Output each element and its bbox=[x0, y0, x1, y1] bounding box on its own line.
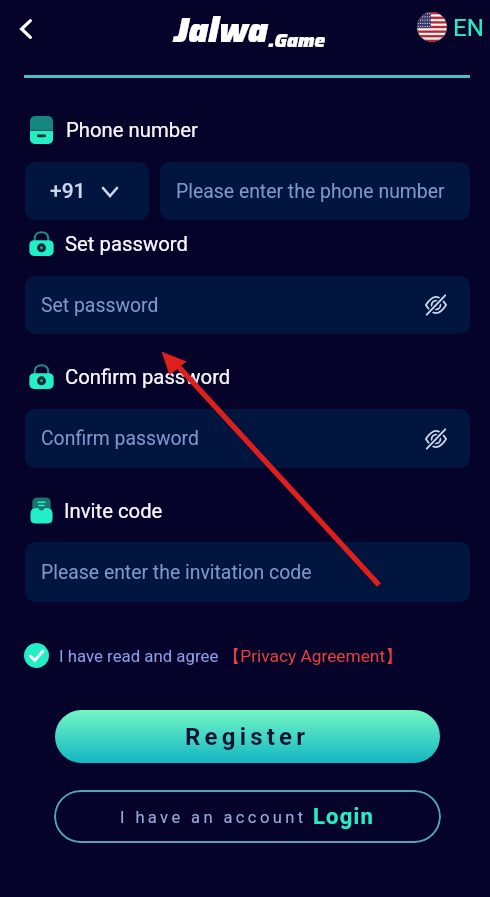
staticText: Register bbox=[185, 723, 310, 751]
button[interactable]: +91 bbox=[25, 162, 149, 220]
staticText: +91 bbox=[50, 179, 86, 204]
staticText: Login bbox=[313, 804, 375, 830]
button[interactable]: I have an account bbox=[54, 790, 441, 843]
staticText: Jalwa bbox=[174, 3, 268, 57]
staticText: 【Privacy Agreement】 bbox=[223, 645, 403, 667]
staticText: I have read and agree bbox=[59, 646, 219, 666]
staticText: Set password bbox=[65, 232, 188, 256]
button[interactable]: Set password bbox=[25, 276, 470, 334]
button[interactable]: Show password bbox=[422, 425, 450, 453]
button[interactable]: Register bbox=[55, 710, 440, 763]
staticText: Set password bbox=[41, 294, 159, 317]
staticText: .Game bbox=[268, 25, 326, 55]
staticText: Confirm password bbox=[65, 365, 231, 389]
button[interactable]: Confirm password bbox=[25, 409, 470, 468]
button[interactable]: Language EN bbox=[417, 12, 484, 42]
button[interactable]: Please enter the invitation code bbox=[25, 542, 470, 602]
button[interactable]: Please enter the phone number bbox=[160, 162, 470, 220]
button[interactable]: Confirm password bbox=[28, 363, 231, 390]
button[interactable]: Back bbox=[8, 11, 44, 47]
staticText: I have an account bbox=[120, 808, 307, 827]
staticText: Phone number bbox=[66, 118, 198, 142]
staticText: Please enter the invitation code bbox=[41, 561, 312, 584]
staticText: Invite code bbox=[64, 499, 163, 523]
staticText: Confirm password bbox=[41, 427, 199, 450]
button[interactable]: Show password bbox=[422, 291, 450, 319]
staticText: EN bbox=[453, 14, 484, 42]
staticText: Please enter the phone number bbox=[176, 180, 445, 203]
button[interactable]: Invite code bbox=[28, 496, 163, 525]
button[interactable]: Set password bbox=[28, 230, 188, 257]
button[interactable]: I have read and agree bbox=[24, 643, 399, 668]
button[interactable]: Phone number bbox=[30, 116, 198, 144]
